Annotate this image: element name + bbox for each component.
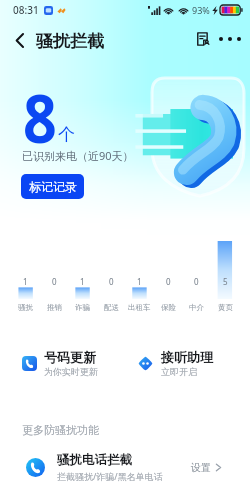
button[interactable]: More options xyxy=(215,24,245,54)
button[interactable]: 标记记录 xyxy=(21,174,84,199)
staticText: 黄页 xyxy=(218,303,233,312)
staticText: 个 xyxy=(58,124,75,145)
staticText: 标记记录 xyxy=(29,179,77,194)
button[interactable]: 接听助理 xyxy=(137,349,250,377)
staticText: 8 xyxy=(23,71,58,162)
staticText: 08:31 xyxy=(13,3,39,17)
staticText: 1 xyxy=(137,276,142,287)
staticText: 0 xyxy=(109,276,114,287)
button[interactable]: 骚扰电话拦截 xyxy=(0,448,250,486)
staticText: 立即开启 xyxy=(161,366,197,377)
staticText: 号码更新 xyxy=(44,349,96,365)
staticText: 骚扰拦截 xyxy=(36,31,104,52)
staticText: 出租车 xyxy=(128,303,151,312)
staticText: 接听助理 xyxy=(161,349,213,365)
staticText: 设置 xyxy=(191,461,211,474)
staticText: 为你实时更新 xyxy=(44,366,98,377)
staticText: 中介 xyxy=(189,303,204,312)
staticText: 0 xyxy=(166,276,171,287)
staticText: 诈骗 xyxy=(75,303,90,312)
staticText: 骚扰 xyxy=(18,303,33,312)
staticText: 5 xyxy=(223,276,228,287)
staticText: 配送 xyxy=(104,303,119,312)
button[interactable]: Back xyxy=(4,24,36,56)
button[interactable]: Report xyxy=(188,24,218,54)
staticText: 0 xyxy=(52,276,57,287)
staticText: 1 xyxy=(80,276,85,287)
staticText: 已识别来电（近90天） xyxy=(22,148,134,163)
staticText: 更多防骚扰功能 xyxy=(22,423,99,437)
staticText: 1 xyxy=(23,276,28,287)
staticText: 93% xyxy=(192,4,210,16)
staticText: 推销 xyxy=(47,303,62,312)
staticText: 保险 xyxy=(161,303,176,312)
button[interactable]: 号码更新 xyxy=(22,349,135,377)
staticText: 0 xyxy=(194,276,199,287)
staticText: 拦截骚扰/诈骗/黑名单电话 xyxy=(57,470,163,482)
staticText: 骚扰电话拦截 xyxy=(57,452,132,468)
